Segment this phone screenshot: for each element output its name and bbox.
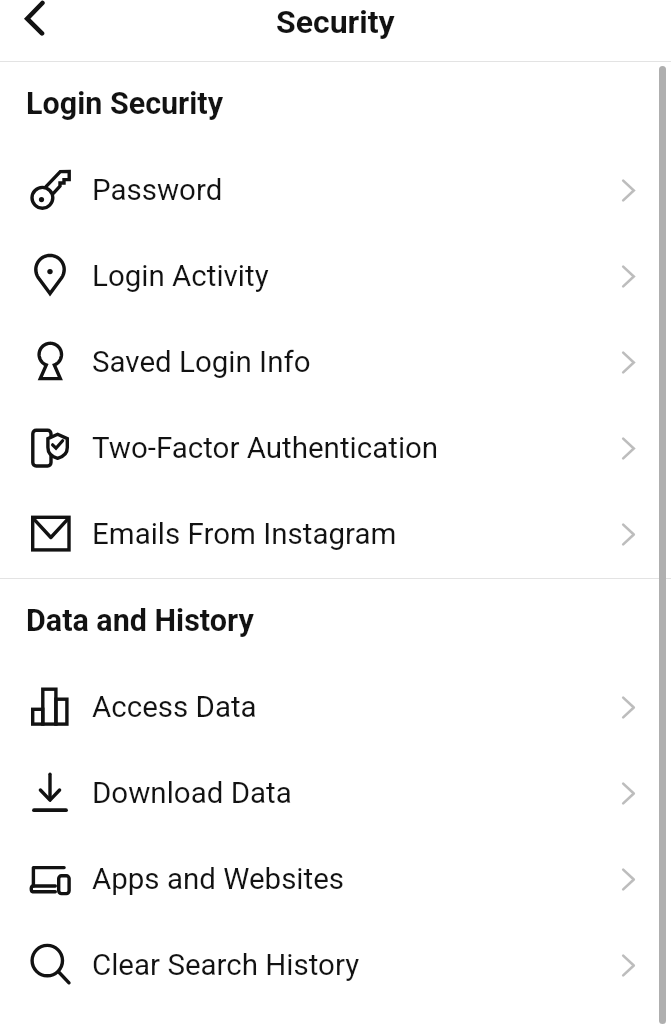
- button[interactable]: Apps and Websites: [0, 837, 671, 923]
- button[interactable]: Two-Factor Authentication: [0, 406, 671, 492]
- button[interactable]: Clear Search History: [0, 923, 671, 1009]
- staticText: Emails From Instagram: [92, 517, 397, 552]
- button[interactable]: Back: [6, 0, 62, 56]
- button[interactable]: Emails From Instagram: [0, 492, 671, 578]
- staticText: Login Activity: [92, 259, 269, 294]
- button[interactable]: Saved Login Info: [0, 320, 671, 406]
- staticText: Access Data: [92, 690, 257, 725]
- staticText: Two-Factor Authentication: [92, 431, 439, 466]
- staticText: Login Security: [26, 86, 224, 122]
- button[interactable]: Access Data: [0, 665, 671, 751]
- button[interactable]: Download Data: [0, 751, 671, 837]
- staticText: Download Data: [92, 776, 292, 811]
- button[interactable]: Password: [0, 148, 671, 234]
- staticText: Data and History: [26, 603, 254, 639]
- staticText: Password: [92, 173, 223, 208]
- button[interactable]: Login Activity: [0, 234, 671, 320]
- staticText: Security: [276, 3, 395, 41]
- staticText: Saved Login Info: [92, 345, 311, 380]
- staticText: Apps and Websites: [92, 862, 345, 897]
- staticText: Clear Search History: [92, 948, 360, 983]
